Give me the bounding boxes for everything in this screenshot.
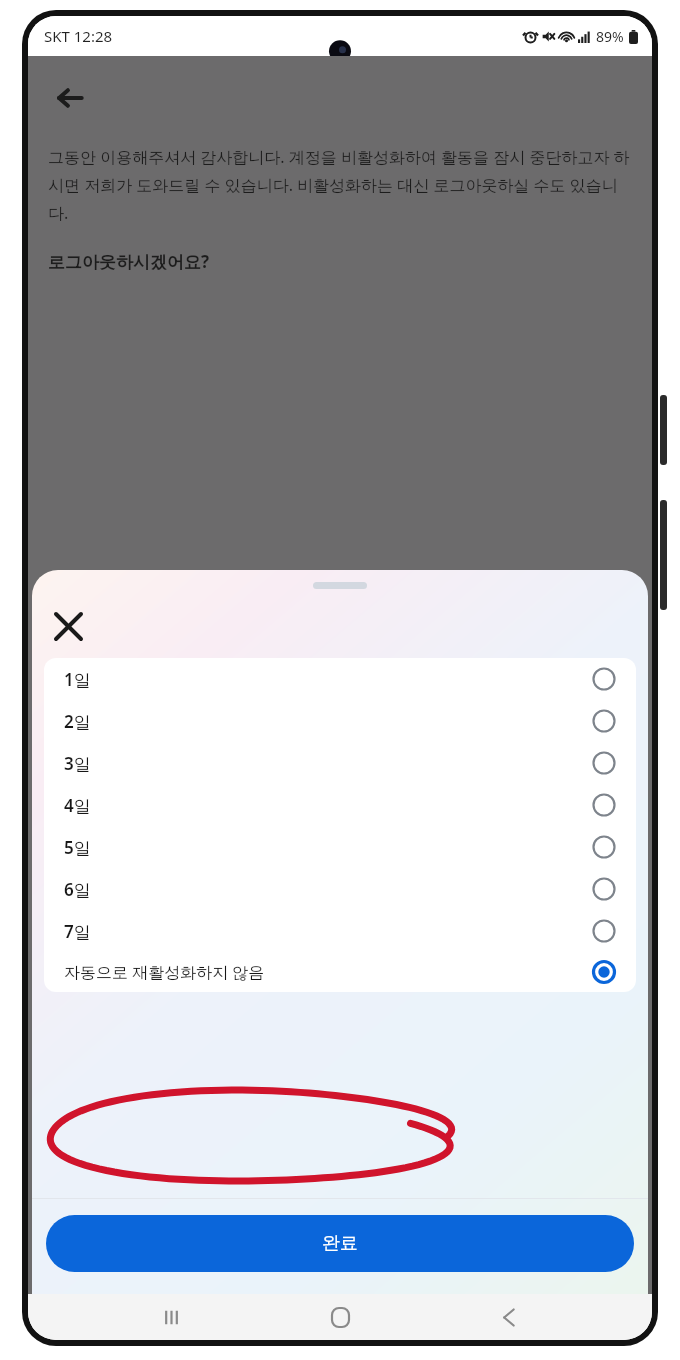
button[interactable]: 5일 <box>44 826 636 868</box>
staticText: 7일 <box>64 920 592 943</box>
staticText: 그동안 이용해주셔서 감사합니다. 계정을 비활성화하여 활동을 잠시 중단하고… <box>48 146 632 224</box>
button[interactable]: 3일 <box>44 742 636 784</box>
staticText: 로그아웃하시겠어요? <box>48 250 210 273</box>
staticText: 5일 <box>64 836 592 859</box>
staticText: 4일 <box>64 794 592 817</box>
button[interactable]: 완료 <box>46 1215 634 1272</box>
button[interactable]: Recents <box>145 1294 197 1340</box>
staticText: 1일 <box>64 668 592 691</box>
button[interactable]: 4일 <box>44 784 636 826</box>
button[interactable]: Close <box>44 602 92 650</box>
button[interactable]: Back <box>48 76 92 120</box>
button[interactable]: 2일 <box>44 700 636 742</box>
button[interactable]: Home <box>314 1294 366 1340</box>
staticText: 6일 <box>64 878 592 901</box>
button[interactable]: Back <box>483 1294 535 1340</box>
staticText: 완료 <box>322 1232 358 1255</box>
staticText: SKT 12:28 <box>44 26 113 46</box>
staticText: 3일 <box>64 752 592 775</box>
staticText: 89% <box>596 27 624 46</box>
button[interactable]: 6일 <box>44 868 636 910</box>
staticText: 2일 <box>64 710 592 733</box>
button[interactable]: 7일 <box>44 910 636 952</box>
staticText: 자동으로 재활성화하지 않음 <box>64 961 592 983</box>
button[interactable]: 1일 <box>44 658 636 700</box>
button[interactable]: 자동으로 재활성화하지 않음 <box>44 952 636 992</box>
